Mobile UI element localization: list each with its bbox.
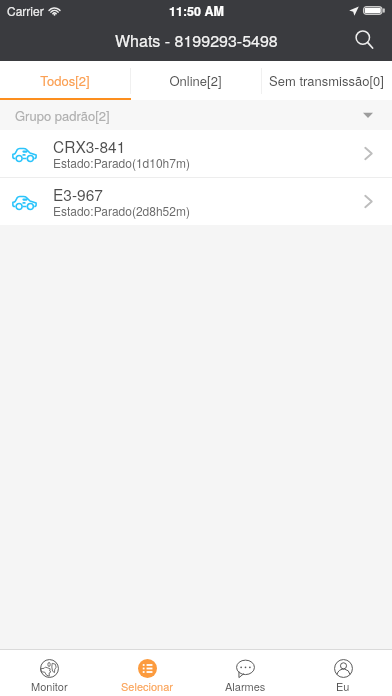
staticText: Selecionar [121, 678, 173, 694]
button[interactable]: E3-967 [0, 178, 392, 225]
button[interactable]: Alarmes [196, 650, 294, 696]
button[interactable]: Eu [294, 650, 392, 696]
button[interactable]: Selecionar [98, 650, 196, 696]
staticText: E3-967 [53, 183, 103, 205]
button[interactable]: Sem transmissão[0] [261, 61, 392, 100]
button[interactable]: Grupo padrão[2] [0, 100, 392, 130]
staticText: Monitor [31, 678, 68, 694]
staticText: Carrier [7, 2, 44, 19]
button[interactable]: Todos[2] [0, 61, 130, 100]
staticText: Eu [336, 678, 350, 694]
button[interactable]: Online[2] [130, 61, 261, 100]
staticText: Estado:Parado(2d8h52m) [53, 202, 190, 219]
staticText: Online[2] [169, 71, 222, 90]
button[interactable]: CRX3-841 [0, 130, 392, 177]
staticText: Whats - 8199293-5498 [115, 29, 278, 52]
staticText: Grupo padrão[2] [15, 106, 110, 125]
staticText: 11:50 AM [169, 2, 224, 20]
staticText: CRX3-841 [53, 135, 126, 157]
staticText: Todos[2] [40, 71, 90, 90]
button[interactable]: Search [348, 21, 392, 61]
staticText: Sem transmissão[0] [269, 71, 384, 90]
staticText: Estado:Parado(1d10h7m) [53, 154, 190, 171]
button[interactable]: Monitor [0, 650, 98, 696]
staticText: Alarmes [225, 678, 266, 694]
